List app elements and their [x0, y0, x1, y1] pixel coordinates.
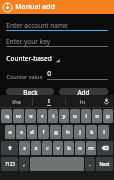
staticText: q [5, 112, 9, 120]
button[interactable]: o [92, 109, 102, 123]
button[interactable]: b [64, 141, 74, 155]
staticText: u [73, 112, 77, 120]
staticText: j [79, 128, 81, 136]
button[interactable]: l [98, 125, 109, 139]
button[interactable]: n [75, 141, 85, 155]
button[interactable]: y [59, 109, 69, 123]
staticText: r [41, 112, 44, 120]
staticText: o [95, 112, 99, 120]
button[interactable]: z [19, 141, 30, 155]
staticText: , [23, 160, 25, 168]
staticText: m [88, 144, 94, 152]
button[interactable]: f [38, 125, 49, 139]
staticText: t [52, 112, 55, 120]
staticText: e [29, 112, 33, 120]
button[interactable]: k [86, 125, 97, 139]
button[interactable]: Enter account name [6, 21, 108, 31]
staticText: Add [77, 88, 90, 95]
staticText: x [34, 144, 38, 152]
button[interactable]: j [74, 125, 85, 139]
staticText: y [62, 112, 66, 120]
button[interactable]: w [13, 109, 24, 123]
staticText: Next [99, 161, 110, 167]
button[interactable]: 0 [47, 69, 108, 80]
button[interactable]: r [37, 109, 47, 123]
button[interactable]: Shift [1, 141, 18, 155]
button[interactable]: , [19, 157, 29, 171]
staticText: ?123 [5, 161, 15, 167]
staticText: f [42, 128, 45, 136]
button[interactable]: e [25, 109, 36, 123]
staticText: 0 [47, 69, 51, 78]
button[interactable]: u [70, 109, 80, 123]
button[interactable]: t [48, 109, 58, 123]
staticText: b [67, 144, 71, 152]
staticText: g [54, 128, 58, 136]
staticText: Counter-based [6, 54, 52, 63]
button[interactable]: Backspace [97, 141, 113, 155]
staticText: z [23, 144, 26, 152]
button[interactable]: g [50, 125, 61, 139]
button[interactable]: hi [66, 95, 98, 107]
button[interactable]: m [86, 141, 96, 155]
staticText: v [56, 144, 60, 152]
button[interactable]: s [16, 125, 26, 139]
staticText: c [46, 144, 49, 152]
button[interactable]: . [85, 157, 95, 171]
button[interactable]: h [62, 125, 73, 139]
staticText: l [103, 128, 105, 136]
staticText: Enter your key [6, 37, 50, 46]
button[interactable]: c [42, 141, 52, 155]
staticText: h [66, 128, 70, 136]
staticText: k [90, 128, 94, 136]
staticText: Manual add [15, 2, 55, 12]
staticText: n [78, 144, 82, 152]
button[interactable]: d [27, 125, 37, 139]
staticText: the [12, 98, 21, 105]
staticText: hi [80, 98, 85, 105]
button[interactable]: the [0, 95, 32, 107]
staticText: p [106, 112, 110, 120]
staticText: w [16, 112, 21, 120]
button[interactable]: q [1, 109, 12, 123]
staticText: . [89, 160, 91, 168]
button[interactable]: ?123 [1, 157, 18, 171]
button[interactable]: Voice input [98, 95, 114, 107]
staticText: Back [23, 88, 38, 95]
staticText: s [20, 128, 23, 136]
button[interactable]: Next [96, 157, 113, 171]
button[interactable]: Add [59, 88, 108, 95]
button[interactable]: App icon [0, 0, 114, 14]
button[interactable]: p [103, 109, 113, 123]
staticText: I [48, 97, 50, 104]
button[interactable]: a [5, 125, 15, 139]
button[interactable]: x [31, 141, 41, 155]
button[interactable] [30, 157, 84, 171]
staticText: d [30, 128, 34, 136]
button[interactable]: v [53, 141, 63, 155]
staticText: i [85, 112, 87, 120]
button[interactable]: Counter-based [6, 53, 60, 64]
staticText: Counter value [6, 73, 43, 80]
button[interactable]: Enter your key [6, 37, 108, 47]
staticText: a [8, 128, 12, 136]
button[interactable]: Back [6, 88, 54, 95]
staticText: Enter account name [6, 21, 68, 30]
button[interactable]: I [33, 95, 65, 107]
button[interactable]: i [81, 109, 91, 123]
other: App icon [3, 3, 12, 12]
other: Open dropdown [55, 58, 60, 63]
